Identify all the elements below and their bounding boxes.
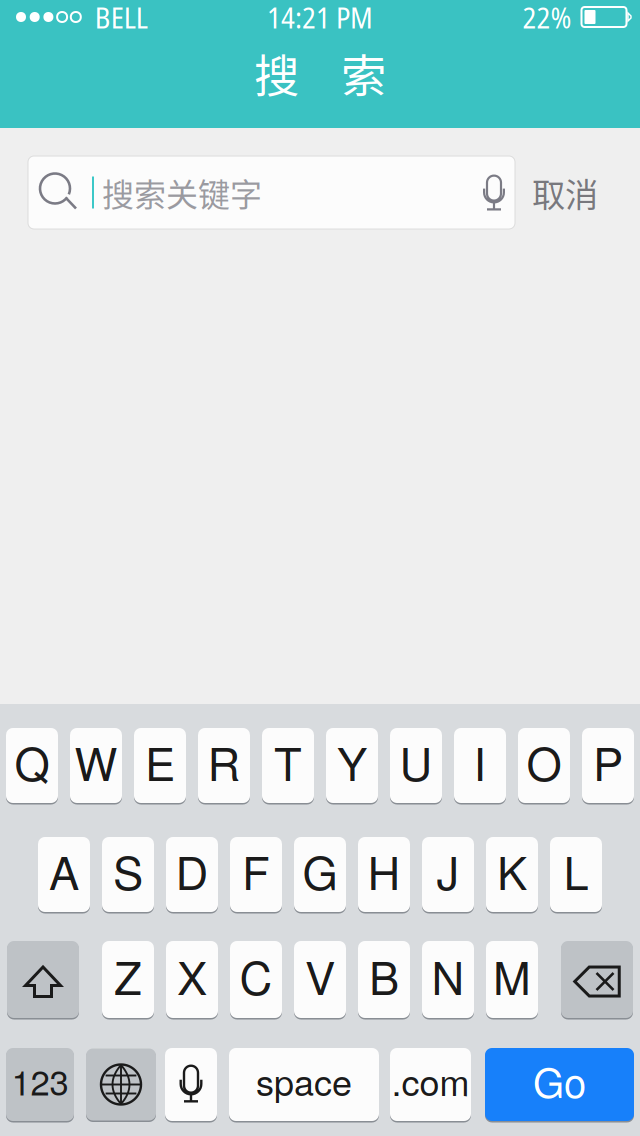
button[interactable]: I: [454, 727, 506, 804]
staticText: A: [49, 838, 79, 903]
button[interactable]: B: [358, 940, 410, 1019]
staticText: G: [302, 838, 337, 903]
staticText: X: [177, 943, 207, 1008]
button[interactable]: 搜索关键字: [28, 156, 515, 229]
button[interactable]: U: [390, 727, 442, 804]
staticText: K: [497, 838, 527, 903]
staticText: C: [239, 943, 272, 1008]
button[interactable]: M: [486, 940, 538, 1019]
button[interactable]: E: [134, 727, 186, 804]
staticText: space: [256, 1055, 352, 1106]
staticText: 索: [341, 40, 386, 106]
staticText: V: [305, 943, 335, 1008]
staticText: R: [207, 729, 240, 794]
staticText: 123: [11, 1056, 68, 1105]
staticText: L: [563, 838, 588, 903]
button[interactable]: N: [422, 940, 474, 1019]
staticText: Z: [114, 943, 142, 1008]
button[interactable]: X: [166, 940, 218, 1019]
staticText: BELL: [95, 0, 148, 37]
staticText: Q: [14, 729, 49, 794]
button[interactable]: H: [358, 836, 410, 913]
button[interactable]: 取消: [532, 156, 598, 229]
staticText: 取消: [532, 168, 598, 217]
staticText: 搜: [254, 40, 299, 106]
staticText: J: [436, 838, 459, 903]
button[interactable]: D: [166, 836, 218, 913]
staticText: N: [431, 943, 464, 1008]
button[interactable]: .com: [390, 1047, 471, 1122]
button[interactable]: space: [229, 1047, 379, 1122]
staticText: F: [242, 838, 270, 903]
button[interactable]: 123: [6, 1047, 74, 1122]
staticText: W: [74, 729, 117, 794]
button[interactable]: P: [582, 727, 634, 804]
button[interactable]: Z: [102, 940, 154, 1019]
button[interactable]: W: [70, 727, 122, 804]
staticText: U: [399, 729, 432, 794]
staticText: E: [145, 729, 175, 794]
button[interactable]: T: [262, 727, 314, 804]
button[interactable]: L: [550, 836, 602, 913]
staticText: T: [274, 729, 302, 794]
staticText: M: [493, 943, 531, 1008]
button[interactable]: O: [518, 727, 570, 804]
button[interactable]: G: [294, 836, 346, 913]
button[interactable]: R: [198, 727, 250, 804]
staticText: 14:21 PM: [267, 0, 373, 37]
staticText: .com: [391, 1055, 469, 1106]
staticText: Go: [533, 1052, 586, 1109]
staticText: O: [526, 729, 561, 794]
staticText: 搜索关键字: [102, 169, 262, 216]
button[interactable]: V: [294, 940, 346, 1019]
staticText: D: [175, 838, 208, 903]
button[interactable]: J: [422, 836, 474, 913]
staticText: I: [473, 729, 486, 794]
button[interactable]: Delete: [561, 940, 633, 1019]
button[interactable]: S: [102, 836, 154, 913]
staticText: S: [113, 838, 143, 903]
staticText: B: [369, 943, 399, 1008]
staticText: P: [593, 729, 623, 794]
button[interactable]: K: [486, 836, 538, 913]
button[interactable]: Q: [6, 727, 58, 804]
staticText: Y: [337, 729, 367, 794]
button[interactable]: A: [38, 836, 90, 913]
button[interactable]: Next keyboard: [86, 1047, 156, 1122]
button[interactable]: Y: [326, 727, 378, 804]
button[interactable]: Shift: [7, 940, 79, 1019]
button[interactable]: Go: [485, 1047, 634, 1122]
staticText: 22%: [522, 0, 571, 37]
button[interactable]: F: [230, 836, 282, 913]
button[interactable]: C: [230, 940, 282, 1019]
staticText: H: [367, 838, 400, 903]
button[interactable]: Dictation: [165, 1047, 217, 1122]
